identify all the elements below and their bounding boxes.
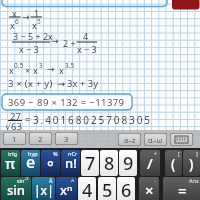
button[interactable]: 2 — [29, 132, 52, 145]
staticText: 3.40168025708305 — [33, 113, 152, 127]
staticText: 3 × (x + y) — [8, 77, 53, 90]
button[interactable]: 1 — [3, 132, 26, 145]
staticText: trig — [8, 150, 18, 157]
staticText: a–z — [124, 135, 136, 145]
button[interactable]: % — [41, 150, 60, 176]
staticText: x — [32, 19, 37, 31]
staticText: sin — [7, 181, 25, 199]
staticText: 3x + 3y — [67, 77, 99, 90]
staticText: x — [10, 19, 15, 31]
staticText: |x| — [34, 182, 54, 198]
button[interactable]: α–ω — [144, 133, 167, 146]
button[interactable]: nCr — [61, 150, 80, 176]
staticText: π — [5, 153, 16, 173]
staticText: 3 — [39, 61, 43, 70]
button[interactable]: ] — [183, 150, 200, 176]
button[interactable] — [170, 133, 193, 146]
button[interactable]: 9 — [119, 150, 137, 176]
staticText: hyp — [28, 150, 38, 157]
staticText: n! — [65, 154, 77, 172]
staticText: sin⁻¹ — [17, 177, 29, 184]
staticText: 2 — [38, 134, 43, 144]
staticText: 369 − 89 × 132 = −11379 — [8, 96, 125, 109]
staticText: 1 — [12, 134, 17, 144]
staticText: x — [12, 7, 17, 19]
staticText: 3.5 — [65, 61, 75, 70]
staticText: = — [178, 180, 187, 200]
staticText: × — [25, 64, 31, 76]
staticText: 6 — [121, 178, 132, 200]
staticText: → — [51, 36, 59, 46]
staticText: ^ — [71, 177, 75, 184]
staticText: 2 + — [63, 37, 76, 49]
staticText: xⁿ — [60, 181, 73, 199]
staticText: = — [25, 113, 31, 126]
staticText: 7 — [85, 151, 96, 176]
button[interactable]: + — [140, 150, 160, 176]
staticText: nCr — [68, 150, 78, 157]
staticText: 5 — [102, 178, 113, 200]
staticText: 8 — [104, 151, 115, 176]
staticText: 27 — [10, 110, 21, 123]
button[interactable]: 5 — [98, 177, 116, 200]
staticText: [ — [178, 150, 180, 157]
button[interactable]: sin⁻¹ — [1, 177, 31, 200]
button[interactable]: Â — [32, 177, 55, 200]
staticText: x − 3 — [19, 43, 39, 55]
staticText: · — [155, 177, 157, 184]
staticText: α–ω — [148, 135, 163, 145]
staticText: + — [154, 150, 158, 157]
staticText: → — [57, 78, 65, 89]
button[interactable]: a–z — [118, 133, 141, 146]
staticText: 3 − 5 + 2x — [13, 30, 53, 42]
staticText: e — [26, 151, 36, 173]
button[interactable]: Ans — [163, 177, 200, 200]
staticText: Â — [49, 177, 53, 184]
staticText: ) — [189, 154, 194, 173]
button[interactable]: ^ — [56, 177, 77, 200]
button[interactable]: 7 — [81, 150, 99, 176]
button[interactable]: [ — [165, 150, 182, 176]
staticText: 5 — [37, 17, 41, 26]
staticText: → — [22, 12, 30, 22]
button[interactable]: 4 — [78, 177, 96, 200]
staticText: 4 — [83, 30, 89, 42]
staticText: ( — [171, 154, 176, 173]
button[interactable]: hyp — [21, 150, 40, 176]
staticText: 6 — [15, 17, 19, 26]
staticText: 0.5 — [14, 61, 24, 70]
staticText: / — [147, 153, 153, 173]
button[interactable]: · — [139, 177, 159, 200]
staticText: x — [33, 64, 38, 76]
staticText: % — [53, 150, 58, 157]
button[interactable]: 8 — [100, 150, 118, 176]
staticText: x − 3 — [77, 43, 97, 55]
staticText: Ans — [189, 177, 199, 184]
staticText: 4 — [82, 178, 93, 200]
button[interactable]: trig — [1, 150, 20, 176]
staticText: ° — [47, 156, 54, 176]
staticText: 1 — [34, 7, 40, 19]
button[interactable]: 6 — [117, 177, 135, 200]
staticText: √63 — [5, 120, 22, 133]
staticText: × — [145, 180, 154, 200]
staticText: → — [47, 64, 55, 74]
staticText: x — [59, 64, 64, 76]
staticText: x — [9, 64, 14, 76]
button[interactable]: 3 — [55, 132, 78, 145]
staticText: ] — [196, 150, 198, 157]
staticText: 3 — [64, 134, 69, 144]
staticText: 9 — [123, 151, 134, 176]
